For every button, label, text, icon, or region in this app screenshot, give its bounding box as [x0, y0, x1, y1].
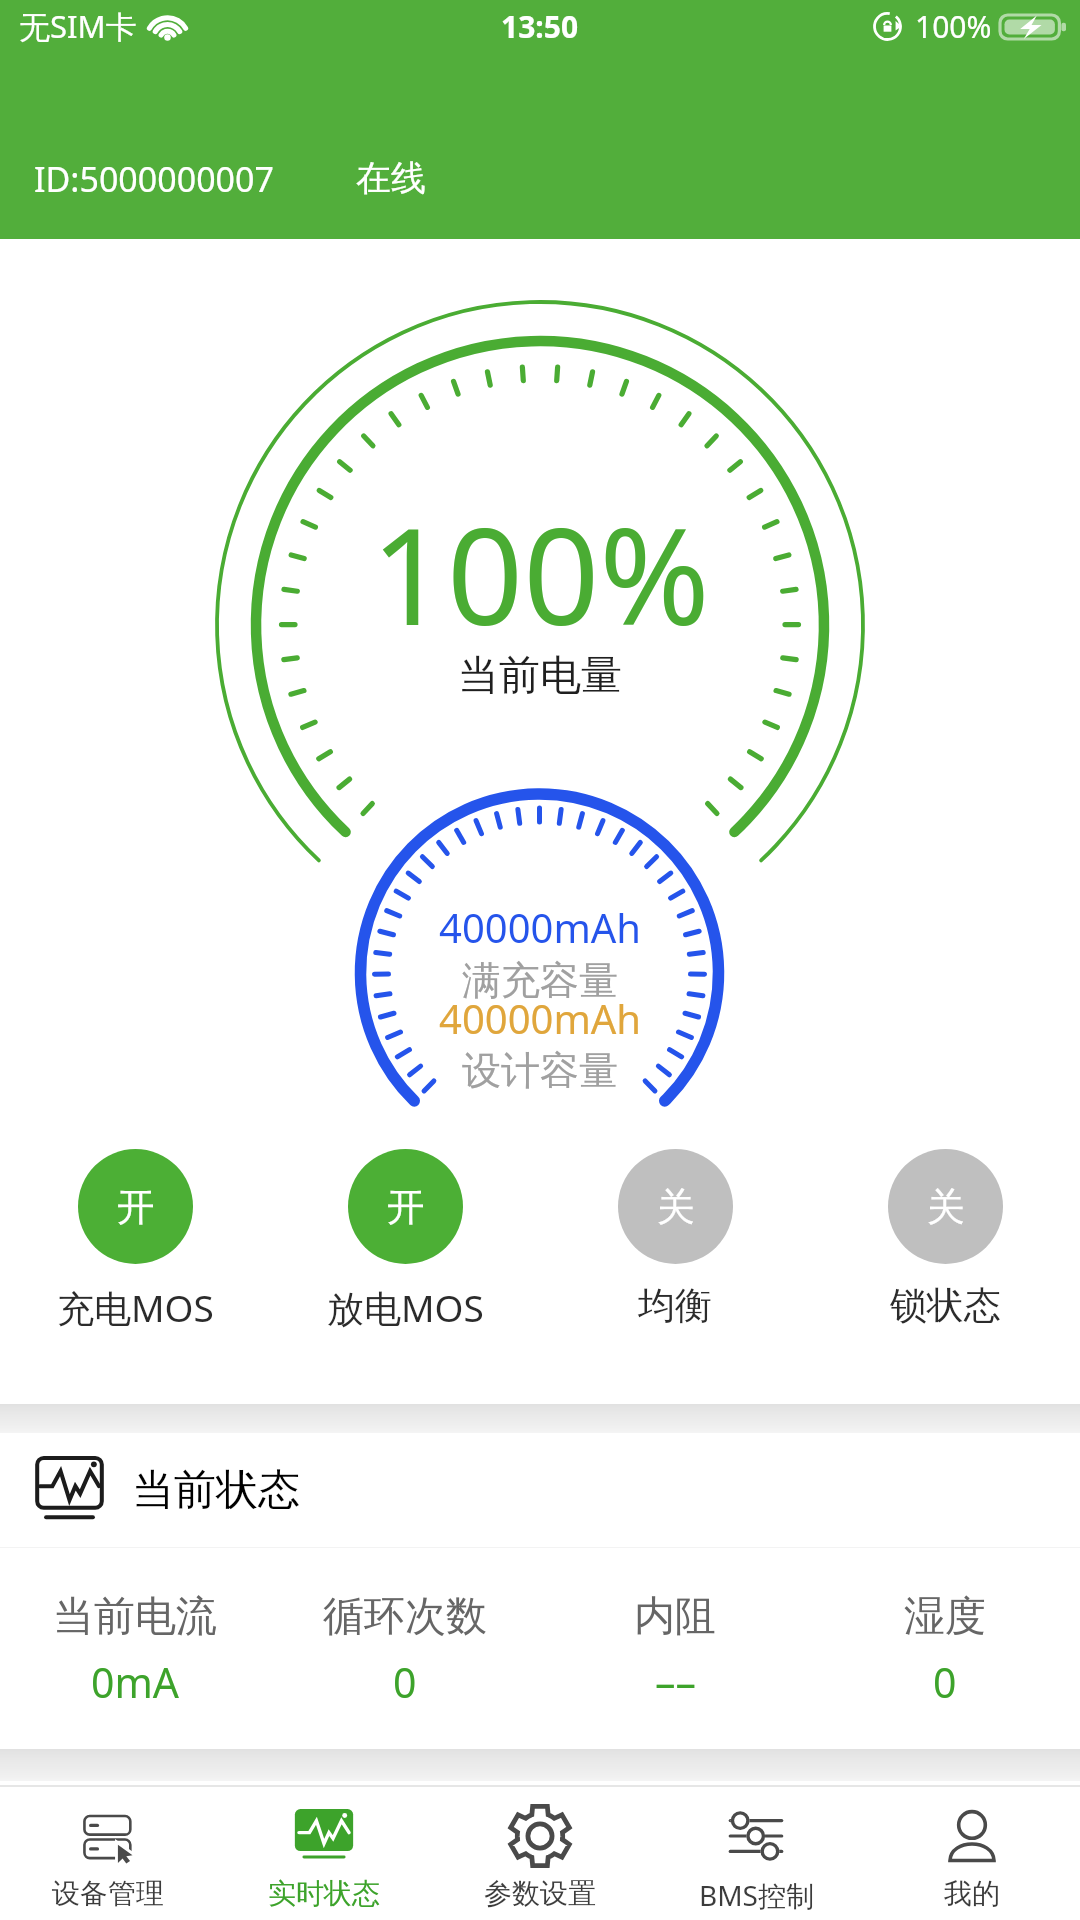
button[interactable]: 实时状态 [216, 1787, 432, 1920]
staticText: 13:50 [501, 6, 579, 47]
button[interactable]: 开 [0, 1149, 270, 1333]
staticText: ID:5000000007 [34, 156, 274, 202]
staticText: 均衡 [638, 1282, 712, 1329]
staticText: 100% [915, 6, 992, 47]
button[interactable]: 开 [270, 1149, 540, 1333]
button[interactable]: 我的 [864, 1787, 1080, 1920]
button[interactable]: 关 [810, 1149, 1080, 1329]
staticText: 内阻 [634, 1591, 716, 1643]
staticText: 0 [393, 1654, 417, 1710]
staticText: 设备管理 [52, 1876, 164, 1911]
staticText: 在线 [356, 156, 426, 200]
staticText: –– [655, 1654, 696, 1710]
staticText: 参数设置 [484, 1876, 596, 1911]
staticText: 设计容量 [462, 1046, 618, 1095]
staticText: 100% [371, 483, 710, 664]
staticText: 0mA [91, 1654, 179, 1710]
staticText: 关 [657, 1183, 695, 1231]
button[interactable]: 设备管理 [0, 1787, 216, 1920]
staticText: 湿度 [904, 1591, 986, 1643]
staticText: 我的 [944, 1876, 1000, 1911]
staticText: 充电MOS [57, 1282, 214, 1333]
staticText: 关 [927, 1183, 965, 1231]
staticText: 当前电流 [53, 1591, 217, 1643]
staticText: 循环次数 [323, 1591, 487, 1643]
button[interactable]: 关 [540, 1149, 810, 1329]
staticText: 当前状态 [132, 1464, 300, 1517]
staticText: BMS控制 [699, 1876, 814, 1914]
staticText: 满充容量 [462, 956, 618, 1005]
staticText: 当前电量 [458, 650, 622, 702]
staticText: 放电MOS [327, 1282, 484, 1333]
button[interactable]: 参数设置 [432, 1787, 648, 1920]
button[interactable]: 当前状态 [0, 1431, 1080, 1549]
staticText: 锁状态 [890, 1282, 1001, 1329]
staticText: 0 [933, 1654, 957, 1710]
button[interactable]: BMS控制 [648, 1787, 864, 1920]
staticText: 无SIM卡 [19, 5, 137, 47]
staticText: 实时状态 [268, 1876, 380, 1911]
staticText: 40000mAh [439, 991, 642, 1045]
staticText: 40000mAh [439, 900, 642, 954]
staticText: 开 [117, 1183, 155, 1231]
staticText: 开 [387, 1183, 425, 1231]
